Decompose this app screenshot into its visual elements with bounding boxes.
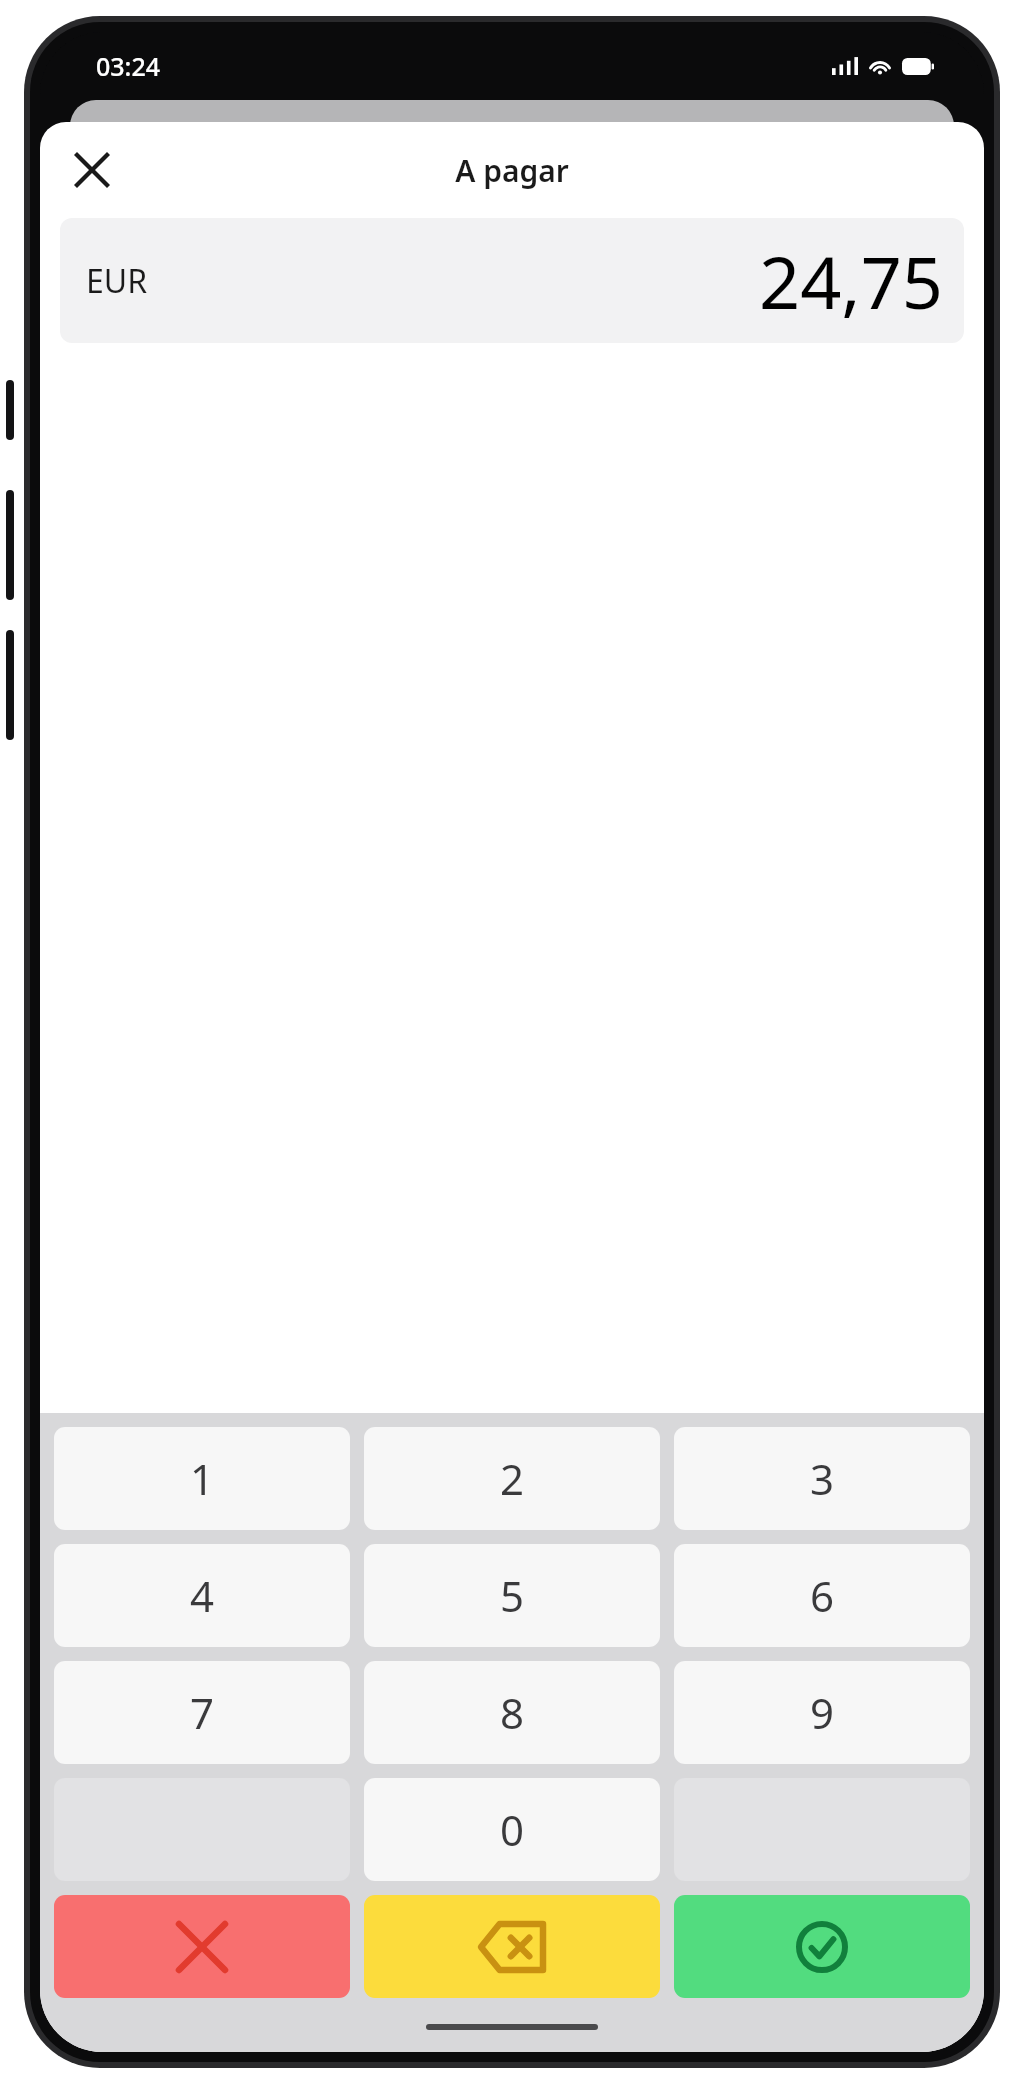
staticText: 7 [190,1684,215,1741]
staticText: 5 [500,1567,525,1624]
button[interactable]: 6 [674,1544,970,1647]
button[interactable]: 8 [364,1661,660,1764]
staticText: 3 [810,1450,835,1507]
button[interactable]: Confirm [674,1895,970,1998]
staticText: EUR [86,259,148,303]
button[interactable]: Backspace [364,1895,660,1998]
staticText: 1 [190,1450,215,1507]
staticText: 6 [810,1567,835,1624]
staticText: 0 [500,1801,525,1858]
staticText: 24,75 [759,232,944,330]
button[interactable]: EUR [60,218,964,343]
button[interactable]: 4 [54,1544,350,1647]
button[interactable]: 2 [364,1427,660,1530]
staticText: 8 [500,1684,525,1741]
button[interactable]: 5 [364,1544,660,1647]
button[interactable]: 3 [674,1427,970,1530]
button[interactable]: 7 [54,1661,350,1764]
staticText: 9 [810,1684,835,1741]
button[interactable]: Cancel [54,1895,350,1998]
staticText: 2 [500,1450,525,1507]
button[interactable]: 9 [674,1661,970,1764]
staticText: 03:24 [96,49,161,83]
staticText: A pagar [455,150,569,191]
button[interactable]: 0 [364,1778,660,1881]
button[interactable]: Close [60,138,124,202]
button[interactable]: 1 [54,1427,350,1530]
staticText: 4 [190,1567,215,1624]
